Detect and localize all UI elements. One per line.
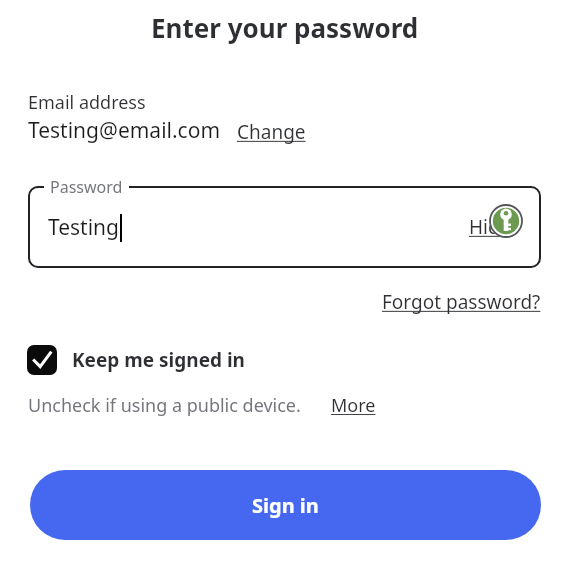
button[interactable]: More — [331, 393, 376, 418]
button[interactable]: Change — [237, 119, 306, 145]
staticText: Sign in — [252, 492, 319, 519]
staticText: Testing@email.com — [28, 116, 221, 145]
button[interactable]: Keep me signed in — [27, 345, 245, 375]
staticText: Testing — [48, 213, 120, 242]
button[interactable]: Forgot password? — [382, 289, 541, 315]
staticText: Email address — [28, 90, 146, 115]
staticText: Password — [50, 176, 123, 198]
staticText: Enter your password — [151, 10, 419, 45]
button[interactable]: Sign in — [30, 470, 541, 540]
staticText: Uncheck if using a public device. — [28, 393, 301, 418]
button[interactable]: Hide — [469, 214, 511, 240]
staticText: Keep me signed in — [72, 347, 245, 373]
